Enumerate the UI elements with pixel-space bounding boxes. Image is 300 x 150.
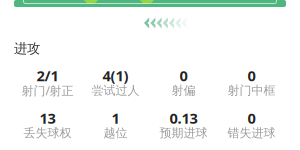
staticText: 尝试过人 (91, 83, 139, 98)
button[interactable]: 0.13 (149, 107, 217, 144)
button[interactable]: 1 (81, 107, 149, 144)
staticText: 13 (39, 108, 55, 128)
staticText: 2/1 (36, 66, 58, 85)
staticText: 预期进球 (159, 126, 207, 140)
staticText: 0.13 (169, 108, 197, 128)
staticText: 射偏 (171, 83, 195, 98)
staticText: 4(1) (102, 66, 128, 85)
staticText: 射门/射正 (21, 82, 73, 98)
button[interactable]: 2/1 (13, 64, 81, 101)
staticText: 丢失球权 (23, 126, 71, 140)
staticText: 0 (247, 108, 255, 128)
staticText: 射门中框 (227, 83, 275, 98)
button[interactable]: 0 (217, 64, 285, 101)
button[interactable]: 0 (149, 64, 217, 101)
staticText: 0 (247, 66, 255, 85)
staticText: 越位 (103, 126, 127, 140)
staticText: 1 (111, 108, 119, 128)
staticText: 错失进球 (227, 126, 275, 140)
button[interactable]: 4(1) (81, 64, 149, 101)
button[interactable]: 0 (217, 107, 285, 144)
staticText: 0 (179, 66, 187, 85)
staticText: 进攻 (14, 40, 40, 57)
button[interactable]: 13 (13, 107, 81, 144)
